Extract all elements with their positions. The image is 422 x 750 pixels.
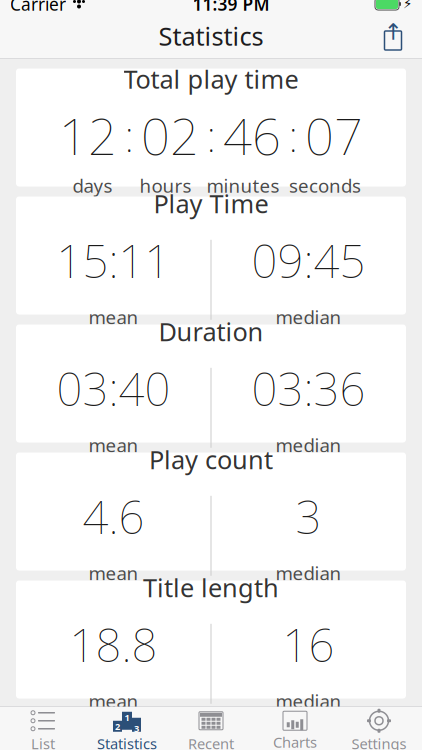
staticText: :	[206, 107, 215, 164]
staticText: 15:11	[56, 230, 170, 290]
staticText: mean	[88, 688, 138, 713]
staticText: Settings	[351, 734, 406, 750]
staticText: 02	[141, 102, 199, 169]
staticText: Carrier	[10, 0, 66, 15]
staticText: median	[275, 688, 341, 713]
staticText: 46	[223, 102, 281, 169]
button[interactable]: Charts	[253, 707, 337, 750]
staticText: seconds	[289, 173, 361, 198]
staticText: 11:39 PM	[192, 0, 269, 15]
staticText: Recent	[188, 734, 234, 750]
staticText: Total play time	[123, 62, 298, 96]
staticText: ↑	[383, 19, 402, 45]
staticText: 3	[295, 486, 321, 546]
staticText: 1	[124, 711, 129, 723]
staticText: Play Time	[153, 187, 268, 220]
staticText: mean	[88, 432, 138, 457]
staticText: Play count	[149, 443, 273, 476]
button[interactable]: Recent	[169, 707, 253, 750]
staticText: Charts	[273, 732, 317, 750]
staticText: 4.6	[82, 486, 144, 546]
staticText: 3	[134, 722, 139, 734]
staticText: median	[275, 432, 341, 457]
staticText: :	[288, 107, 297, 164]
staticText: 03:40	[56, 358, 170, 418]
staticText: 2	[115, 720, 120, 732]
staticText: days	[72, 173, 112, 198]
staticText: Statistics	[158, 19, 263, 53]
staticText: hours	[139, 173, 191, 198]
staticText: median	[275, 560, 341, 585]
staticText: mean	[88, 560, 138, 585]
button[interactable]: Share	[372, 17, 414, 55]
staticText: minutes	[206, 173, 279, 198]
staticText: 12	[59, 102, 117, 169]
staticText: Title length	[143, 571, 279, 604]
button[interactable]: List	[1, 707, 85, 750]
staticText: median	[275, 304, 341, 329]
staticText: :	[124, 107, 133, 164]
staticText: mean	[88, 304, 138, 329]
staticText: 16	[282, 614, 334, 674]
staticText: Duration	[158, 315, 263, 348]
staticText: 07	[305, 102, 363, 169]
staticText: 09:45	[251, 230, 365, 290]
staticText: 03:36	[251, 358, 365, 418]
button[interactable]: 2	[85, 707, 169, 750]
button[interactable]: Settings	[337, 707, 421, 750]
staticText: Statistics	[97, 734, 157, 750]
staticText: ⚡︎	[403, 0, 412, 11]
staticText: List	[31, 734, 55, 750]
staticText: 18.8	[69, 614, 157, 674]
